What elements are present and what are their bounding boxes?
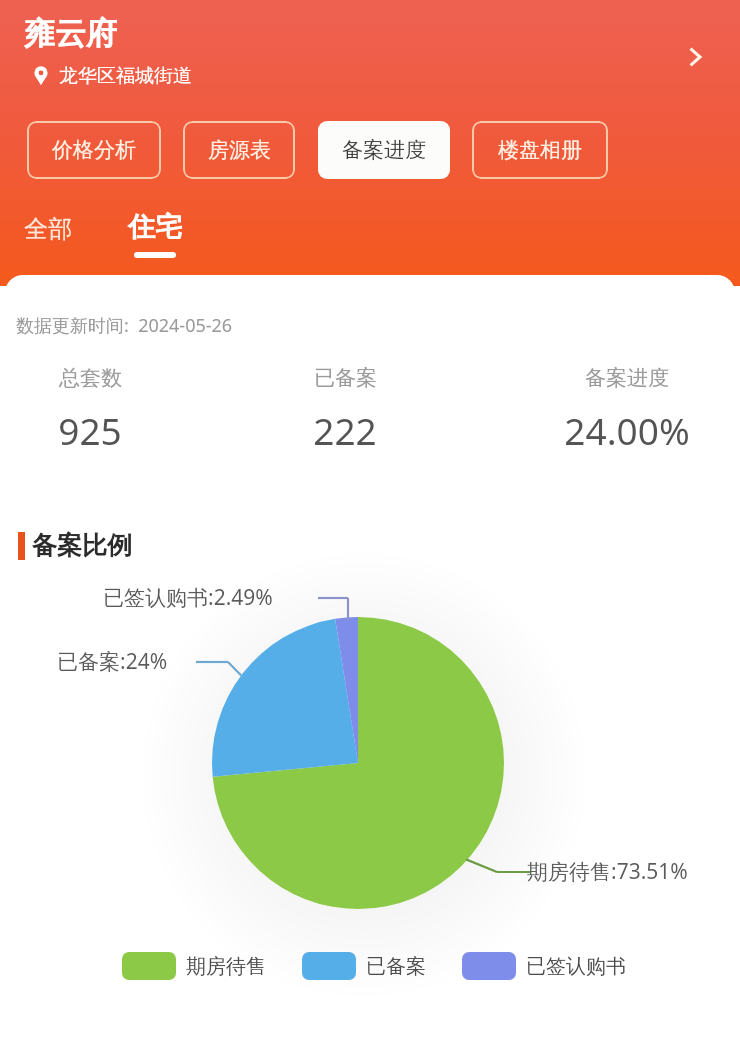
button[interactable]: 房源表	[183, 121, 295, 179]
staticText: 楼盘相册	[498, 137, 582, 163]
staticText: 住宅	[128, 210, 182, 244]
staticText: 数据更新时间: 2024-05-26	[16, 313, 233, 338]
button[interactable]: 价格分析	[27, 121, 161, 179]
staticText: 全部	[24, 214, 72, 244]
staticText: 雍云府	[24, 14, 117, 53]
staticText: 龙华区福城街道	[59, 64, 192, 88]
staticText: 备案进度	[585, 365, 669, 391]
staticText: 价格分析	[52, 137, 136, 163]
staticText: 备案进度	[342, 137, 426, 163]
staticText: 已签认购书	[526, 954, 626, 979]
button[interactable]: 期房待售	[122, 952, 266, 980]
button[interactable]: 更多	[670, 32, 720, 82]
staticText: 已备案	[366, 954, 426, 979]
staticText: 已备案:24%	[57, 647, 168, 676]
button[interactable]: 已备案	[302, 952, 426, 980]
button[interactable]: 已签认购书	[462, 952, 626, 980]
staticText: 期房待售:73.51%	[527, 857, 688, 886]
staticText: 备案比例	[32, 530, 132, 561]
button[interactable]: 住宅	[118, 206, 192, 262]
button[interactable]: 全部	[14, 210, 82, 248]
button[interactable]: 总套数	[5, 365, 180, 455]
staticText: 已签认购书:2.49%	[103, 583, 273, 612]
button[interactable]: 楼盘相册	[472, 121, 608, 179]
staticText: 总套数	[59, 365, 122, 391]
staticText: 已备案	[314, 365, 377, 391]
button[interactable]: 已备案	[255, 365, 435, 455]
staticText: 925	[58, 405, 122, 455]
staticText: 期房待售	[186, 954, 266, 979]
staticText: 房源表	[208, 137, 271, 163]
staticText: 222	[313, 405, 377, 455]
staticText: 24.00%	[564, 405, 690, 455]
button[interactable]: 备案进度	[537, 365, 717, 455]
button[interactable]: 备案进度	[318, 121, 450, 179]
